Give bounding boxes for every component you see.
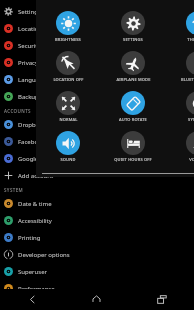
button[interactable]: LOCATION OFF (42, 51, 94, 82)
button[interactable]: Add account (0, 167, 194, 184)
button[interactable]: Backup & reset (0, 88, 194, 105)
button[interactable]: AIRPLANE MODE (107, 51, 159, 82)
staticText: Language & input (18, 76, 69, 84)
staticText: Backup & reset (18, 93, 61, 101)
staticText: Developer options (18, 251, 70, 259)
button[interactable]: AUTO ROTATE (107, 91, 159, 122)
button[interactable]: Privacy (0, 54, 194, 71)
staticText: ACCOUNTS (4, 108, 31, 114)
staticText: Location (18, 25, 43, 33)
button[interactable]: Performance (0, 280, 194, 297)
button[interactable]: Dropbox (0, 116, 194, 133)
button[interactable]: Developer options (0, 246, 194, 263)
staticText: Privacy (18, 59, 39, 67)
button[interactable]: SYNC OFF (172, 91, 194, 122)
button[interactable]: Settings (0, 3, 194, 20)
staticText: LOCATION OFF (53, 77, 84, 82)
staticText: SYSTEM (4, 187, 24, 193)
staticText: AIRPLANE MODE (116, 77, 151, 82)
staticText: BLUETOOTH OFF (181, 77, 194, 82)
button[interactable]: Superuser (0, 263, 194, 280)
staticText: QUIET HOURS OFF (114, 157, 152, 162)
staticText: NORMAL (59, 117, 78, 122)
staticText: SYNC OFF (188, 117, 194, 122)
button[interactable]: VOLUME (172, 131, 194, 162)
button[interactable]: BRIGHTNESS (42, 11, 94, 42)
staticText: THOMSON (187, 37, 194, 42)
button[interactable]: Security (0, 37, 194, 54)
staticText: Performance (18, 285, 55, 293)
button[interactable]: Location (0, 20, 194, 37)
staticText: Add account (18, 172, 54, 180)
staticText: Accessibility (18, 217, 52, 225)
button[interactable]: SOUND (42, 131, 94, 162)
button[interactable]: Back (0, 289, 64, 310)
staticText: AUTO ROTATE (119, 117, 147, 122)
button[interactable]: Home (64, 289, 129, 310)
staticText: About tablet (18, 300, 53, 308)
button[interactable]: Language & input (0, 71, 194, 88)
staticText: VOLUME (189, 157, 194, 162)
staticText: SOUND (60, 157, 76, 162)
staticText: Google (18, 155, 39, 163)
button[interactable]: Accessibility (0, 212, 194, 229)
button[interactable]: Google (0, 150, 194, 167)
staticText: Superuser (18, 268, 47, 276)
staticText: Facebook (18, 138, 45, 146)
button[interactable]: Date & time (0, 195, 194, 212)
button[interactable]: Facebook (0, 133, 194, 150)
button[interactable]: About tablet (0, 297, 194, 310)
button[interactable]: NORMAL (42, 91, 94, 122)
staticText: Date & time (18, 200, 52, 208)
button[interactable]: Recents (129, 289, 194, 310)
staticText: Printing (18, 234, 41, 242)
staticText: Settings (18, 8, 41, 16)
staticText: Security (18, 42, 41, 50)
button[interactable]: BLUETOOTH OFF (172, 51, 194, 82)
button[interactable]: SETTINGS (107, 11, 159, 42)
staticText: Dropbox (18, 121, 43, 129)
button[interactable]: THOMSON (172, 11, 194, 42)
button[interactable]: Printing (0, 229, 194, 246)
button[interactable]: QUIET HOURS OFF (107, 131, 159, 162)
staticText: BRIGHTNESS (55, 37, 81, 42)
staticText: SETTINGS (123, 37, 143, 42)
